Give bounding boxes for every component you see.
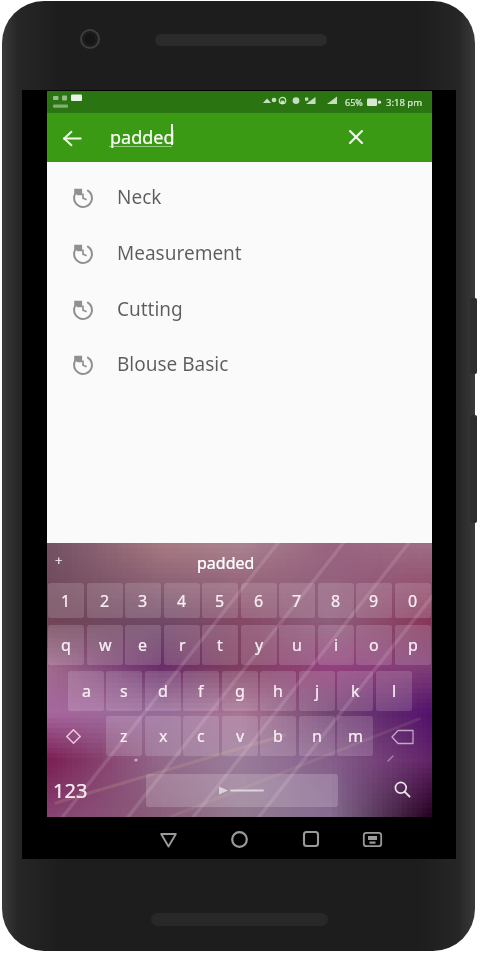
staticText: v — [236, 725, 245, 747]
staticText: e — [138, 634, 148, 656]
staticText: u — [292, 634, 302, 656]
button[interactable]: Space — [146, 774, 338, 807]
staticText: o — [369, 634, 379, 656]
button[interactable]: n — [299, 716, 335, 756]
button[interactable]: Clear search — [339, 120, 373, 154]
staticText: 123 — [53, 777, 88, 804]
button[interactable]: r — [164, 625, 200, 665]
button[interactable]: Blouse Basic — [47, 337, 432, 392]
staticText: g — [235, 680, 245, 702]
staticText: 3:18 pm — [386, 96, 423, 109]
button[interactable]: Neck — [47, 170, 432, 225]
button[interactable]: p — [395, 625, 431, 665]
button[interactable]: 6 — [241, 583, 277, 618]
staticText: b — [273, 725, 283, 747]
staticText: Cutting — [117, 296, 183, 322]
button[interactable]: 2 — [87, 583, 123, 618]
button[interactable]: Back — [150, 821, 186, 857]
staticText: 0 — [408, 590, 418, 612]
button[interactable]: 4 — [164, 583, 200, 618]
staticText: k — [351, 680, 360, 702]
button[interactable]: e — [125, 625, 161, 665]
button[interactable]: o — [356, 625, 392, 665]
staticText: d — [158, 680, 168, 702]
button[interactable]: x — [145, 716, 181, 756]
button[interactable]: f — [183, 671, 219, 711]
button[interactable]: l — [376, 671, 412, 711]
button[interactable]: b — [260, 716, 296, 756]
button[interactable]: q — [48, 625, 84, 665]
button[interactable]: 123 — [49, 763, 99, 811]
staticText: m — [348, 725, 363, 747]
button[interactable]: Shift — [53, 716, 98, 756]
button[interactable]: Search — [380, 765, 428, 811]
button[interactable]: Change keyboard — [354, 821, 390, 857]
staticText: w — [99, 634, 112, 656]
button[interactable]: 0 — [395, 583, 431, 618]
staticText: j — [315, 680, 320, 702]
staticText: i — [334, 634, 339, 656]
button[interactable]: g — [222, 671, 258, 711]
staticText: l — [392, 680, 397, 702]
staticText: padded — [197, 552, 255, 574]
button[interactable]: 9 — [356, 583, 392, 618]
staticText: Blouse Basic — [117, 351, 229, 377]
staticText: c — [197, 725, 205, 747]
button[interactable]: s — [106, 671, 142, 711]
button[interactable]: Back — [54, 120, 90, 156]
button[interactable]: h — [260, 671, 296, 711]
button[interactable]: 7 — [279, 583, 315, 618]
staticText: 3 — [138, 590, 148, 612]
staticText: p — [408, 634, 418, 656]
button[interactable]: Recent apps — [293, 821, 329, 857]
staticText: n — [312, 725, 322, 747]
staticText: x — [159, 725, 168, 747]
button[interactable]: 8 — [318, 583, 354, 618]
button[interactable]: 3 — [125, 583, 161, 618]
staticText: Neck — [117, 184, 162, 210]
staticText: q — [61, 634, 71, 656]
staticText: f — [198, 680, 204, 702]
staticText: t — [217, 634, 223, 656]
button[interactable]: z — [106, 716, 142, 756]
staticText: 8 — [331, 590, 341, 612]
staticText: z — [120, 725, 128, 747]
button[interactable]: v — [222, 716, 258, 756]
button[interactable]: j — [299, 671, 335, 711]
button[interactable]: 1 — [48, 583, 84, 618]
button[interactable]: Measurement — [47, 226, 432, 281]
staticText: 4 — [177, 590, 187, 612]
button[interactable]: u — [279, 625, 315, 665]
staticText: s — [120, 680, 128, 702]
button[interactable]: d — [145, 671, 181, 711]
button[interactable]: w — [87, 625, 123, 665]
button[interactable]: a — [68, 671, 104, 711]
staticText: 6 — [254, 590, 264, 612]
button[interactable]: m — [337, 716, 373, 756]
button[interactable]: i — [318, 625, 354, 665]
staticText: 1 — [61, 590, 71, 612]
button[interactable]: Cutting — [47, 282, 432, 337]
button[interactable]: Home — [221, 821, 257, 857]
staticText: 7 — [292, 590, 302, 612]
staticText: h — [273, 680, 283, 702]
staticText: 9 — [369, 590, 379, 612]
button[interactable]: t — [202, 625, 238, 665]
staticText: 5 — [215, 590, 225, 612]
staticText: Measurement — [117, 240, 242, 266]
staticText: padded — [110, 125, 175, 150]
staticText: + — [55, 551, 63, 569]
button[interactable]: 5 — [202, 583, 238, 618]
button[interactable]: y — [241, 625, 277, 665]
staticText: 65% — [345, 96, 363, 108]
staticText: r — [179, 634, 186, 656]
staticText: y — [255, 634, 264, 656]
button[interactable]: k — [337, 671, 373, 711]
staticText: 2 — [100, 590, 110, 612]
button[interactable]: c — [183, 716, 219, 756]
button[interactable]: Backspace — [381, 716, 426, 756]
staticText: a — [82, 680, 91, 702]
